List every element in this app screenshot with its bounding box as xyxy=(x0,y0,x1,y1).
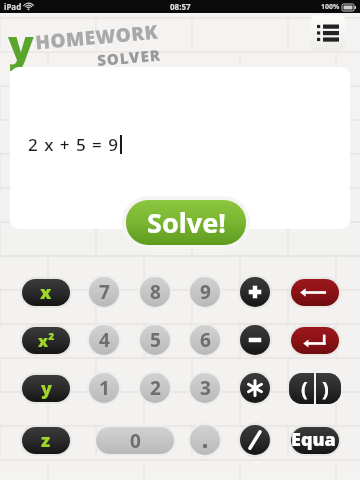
button[interactable]: Close parenthesis xyxy=(316,373,341,404)
button[interactable]: 6 xyxy=(188,323,222,357)
button[interactable]: Solve! xyxy=(122,196,250,249)
staticText: y xyxy=(8,16,34,73)
staticText: SOLVER xyxy=(96,45,162,70)
button[interactable] xyxy=(188,423,222,457)
button[interactable]: 4 xyxy=(87,323,121,357)
staticText: ) xyxy=(322,375,329,402)
button[interactable]: 0 xyxy=(94,425,176,456)
staticText: 3 xyxy=(200,375,211,401)
staticText: 1 xyxy=(99,375,110,401)
staticText: Solve! xyxy=(147,204,226,241)
staticText: 0 xyxy=(130,428,141,454)
button[interactable]: Plus xyxy=(238,275,272,309)
button[interactable]: 2 x + 5 = 9 xyxy=(10,67,350,229)
button[interactable]: 1 xyxy=(87,371,121,405)
staticText: 4 xyxy=(99,327,110,353)
button[interactable]: z xyxy=(20,425,72,456)
staticText: 8 xyxy=(150,279,161,305)
staticText: y xyxy=(41,376,52,401)
staticText: x² xyxy=(38,330,55,352)
staticText: 100% xyxy=(321,2,340,12)
button[interactable]: x xyxy=(20,277,72,308)
button[interactable]: Backspace xyxy=(289,277,341,308)
staticText: z xyxy=(41,428,51,453)
button[interactable]: Minus xyxy=(238,323,272,357)
staticText: iPad xyxy=(4,1,22,12)
button[interactable]: 9 xyxy=(188,275,222,309)
button[interactable]: Equals xyxy=(289,425,341,456)
staticText: 2 xyxy=(150,375,161,401)
staticText: HOMEWORK xyxy=(34,19,160,55)
staticText: 5 xyxy=(150,327,161,353)
staticText: 08:57 xyxy=(170,1,191,12)
staticText: 6 xyxy=(200,327,211,353)
staticText: Equals xyxy=(291,427,339,454)
button[interactable]: 3 xyxy=(188,371,222,405)
button[interactable]: 8 xyxy=(138,275,172,309)
button[interactable]: 7 xyxy=(87,275,121,309)
button[interactable]: Menu xyxy=(310,15,346,51)
button[interactable]: x² xyxy=(20,325,72,356)
button[interactable]: 5 xyxy=(138,323,172,357)
button[interactable]: y xyxy=(20,373,72,404)
staticText: x xyxy=(40,280,52,305)
staticText: 2 x + 5 = 9 xyxy=(28,133,119,156)
staticText: 7 xyxy=(99,279,110,305)
button[interactable]: Open parenthesis xyxy=(289,373,314,404)
button[interactable]: 2 xyxy=(138,371,172,405)
button[interactable]: Multiply xyxy=(238,371,272,405)
button[interactable]: Enter xyxy=(289,325,341,356)
staticText: 9 xyxy=(200,279,211,305)
staticText: ( xyxy=(301,375,308,402)
button[interactable]: Divide xyxy=(238,423,272,457)
